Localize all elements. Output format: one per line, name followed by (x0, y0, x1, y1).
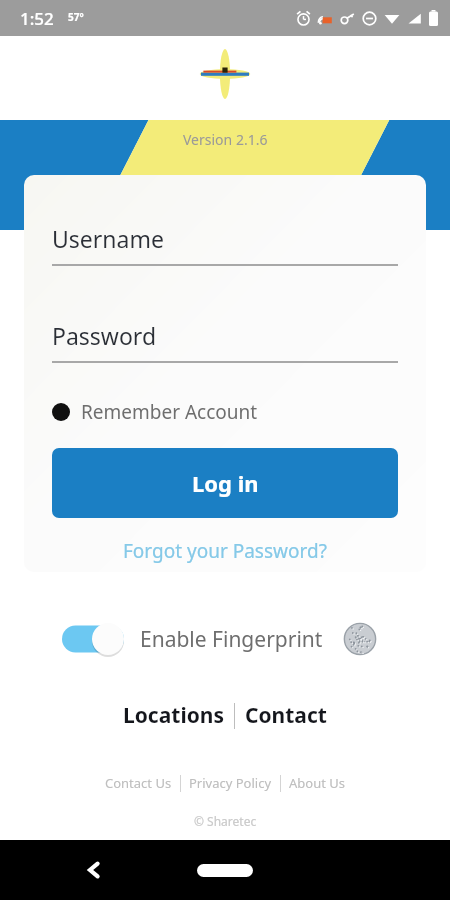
staticText: © Sharetec (194, 813, 257, 829)
button[interactable]: Enable Fingerprint toggle (62, 623, 124, 655)
button[interactable]: Home (185, 855, 265, 885)
staticText: Privacy Policy (189, 774, 272, 792)
staticText: 1:52 (20, 7, 54, 30)
button[interactable]: About Us (281, 771, 354, 795)
staticText: Forgot your Password? (123, 538, 327, 564)
button[interactable]: Password (52, 320, 398, 363)
staticText: Locations (123, 701, 224, 730)
button[interactable]: Remember Account (52, 395, 258, 429)
staticText: Contact Us (105, 774, 172, 792)
button[interactable]: Contact Us (97, 771, 180, 795)
staticText: Password (52, 320, 157, 351)
staticText: Version 2.1.6 (183, 130, 268, 149)
button[interactable]: Contact (235, 697, 337, 734)
button[interactable]: Locations (113, 697, 234, 734)
button[interactable]: Fingerprint (343, 622, 377, 656)
staticText: 57° (68, 10, 84, 24)
button[interactable]: Forgot your Password? (52, 532, 398, 570)
button[interactable]: Back (72, 848, 116, 892)
button[interactable]: Privacy Policy (181, 771, 280, 795)
button[interactable]: Username (52, 223, 398, 266)
staticText: Remember Account (81, 399, 258, 425)
staticText: Log in (192, 468, 259, 498)
staticText: About Us (289, 774, 346, 792)
staticText: Enable Fingerprint (140, 625, 323, 654)
staticText: Username (52, 223, 164, 254)
staticText: Contact (245, 701, 327, 730)
button[interactable]: Log in (52, 448, 398, 518)
